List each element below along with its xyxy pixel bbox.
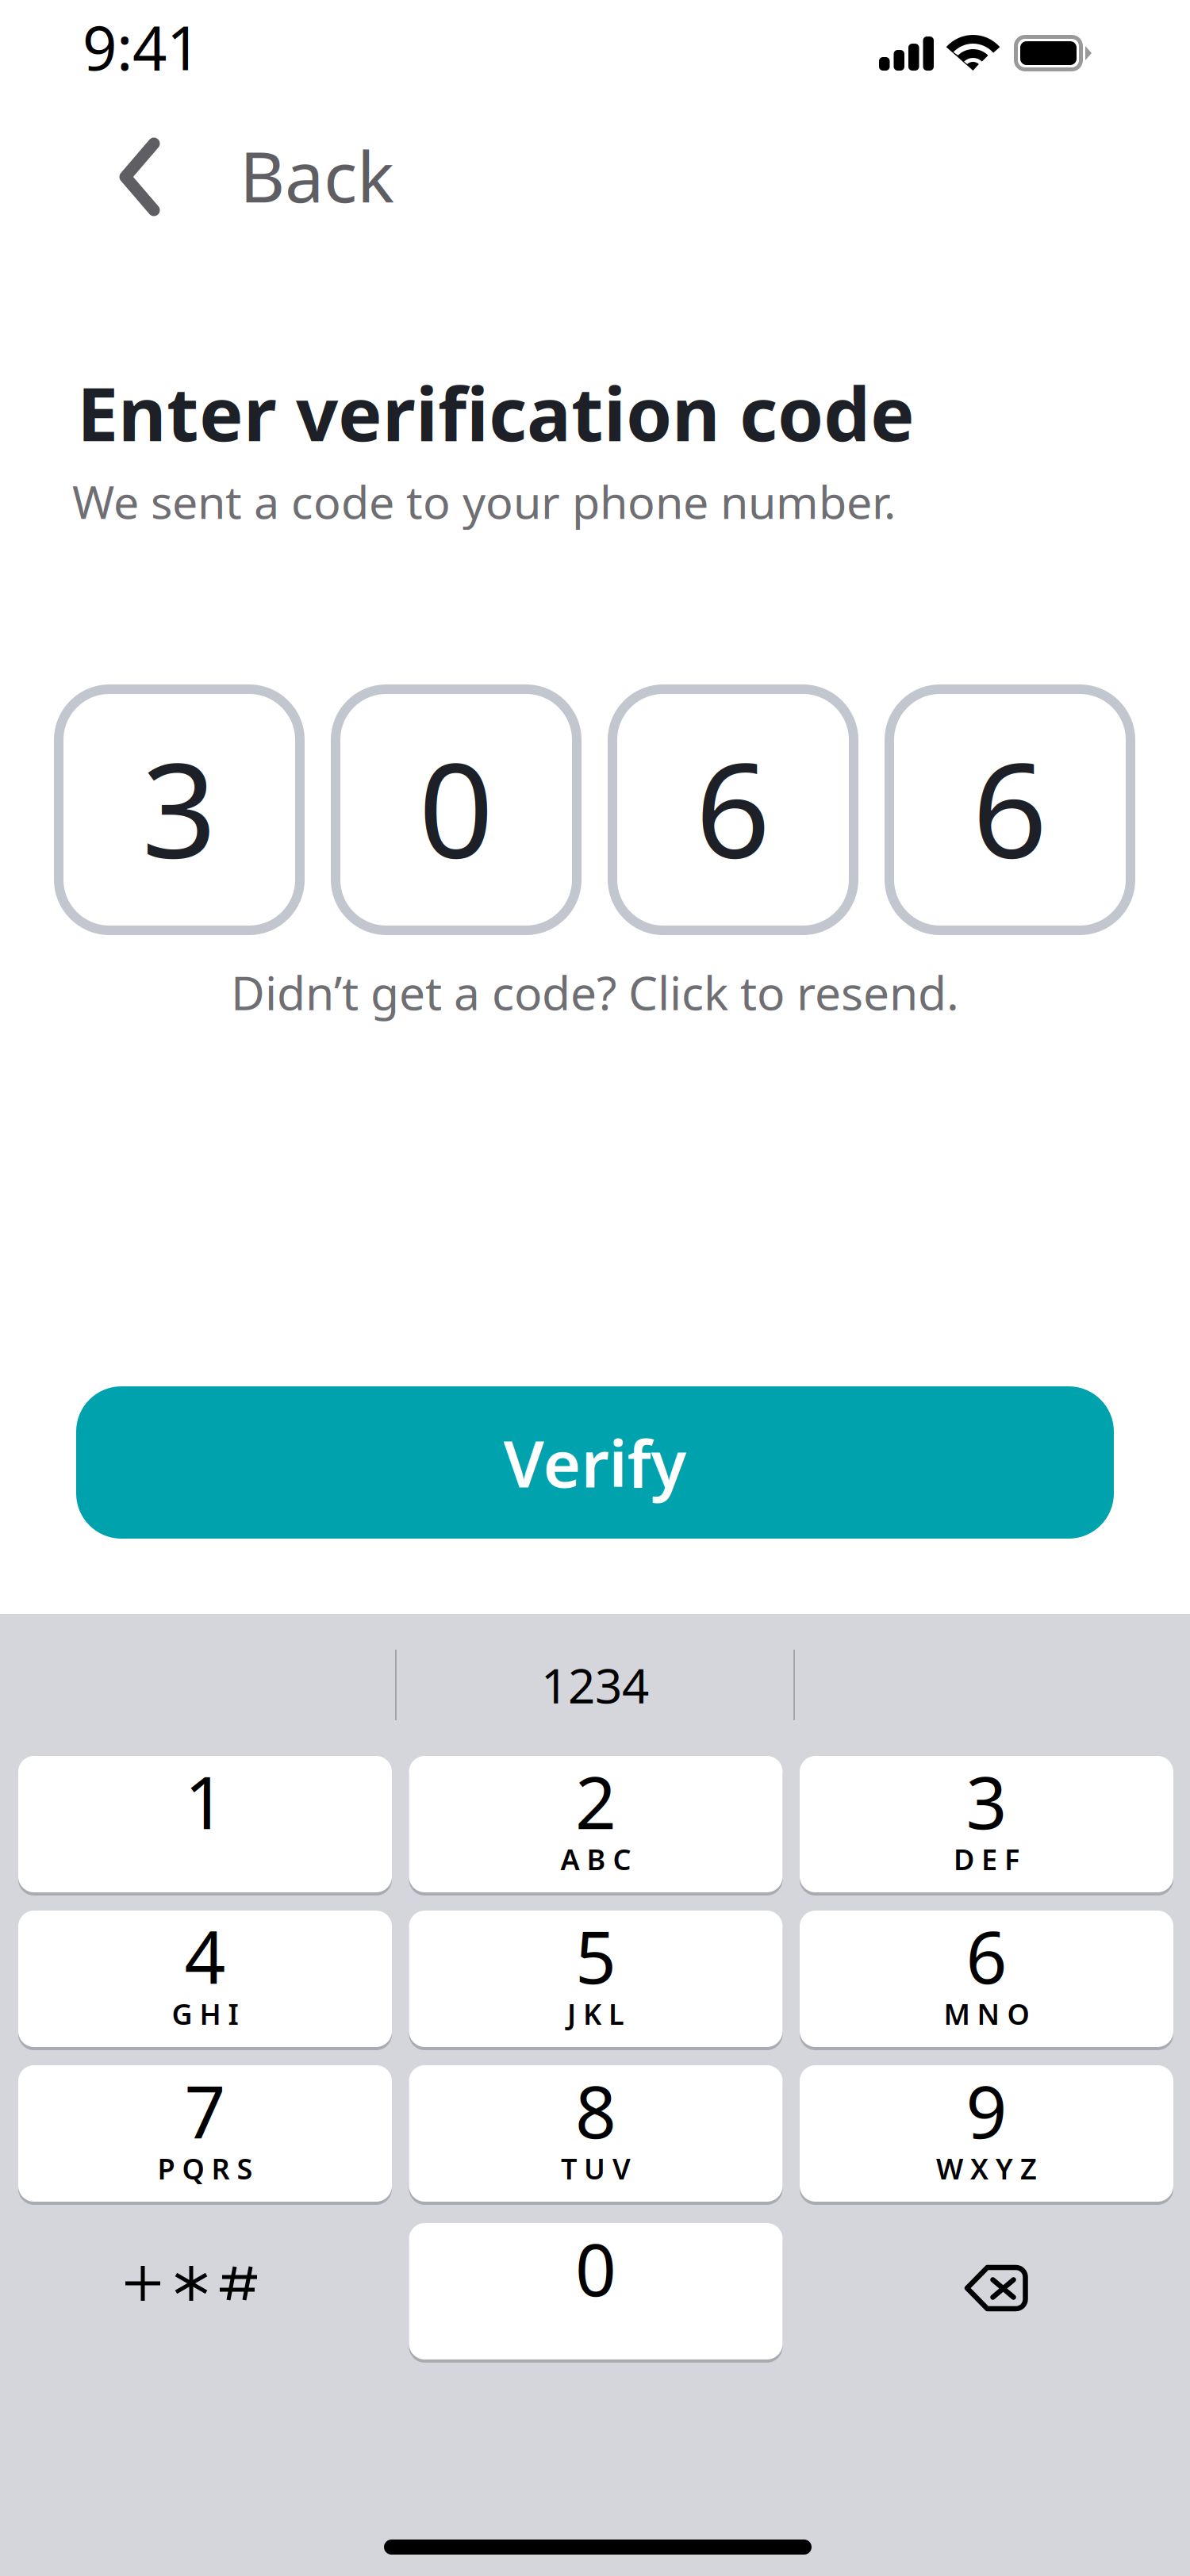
staticText: 3 <box>966 1753 1007 1849</box>
staticText: 1 <box>184 1753 226 1849</box>
staticText: P Q R S <box>157 2149 253 2187</box>
staticText: 8 <box>575 2063 616 2158</box>
staticText: 3 <box>142 720 217 894</box>
button[interactable]: 1234 <box>397 1614 793 1756</box>
staticText: 6 <box>972 720 1048 894</box>
staticText: D E F <box>954 1840 1019 1878</box>
staticText: We sent a code to your phone number. <box>72 471 896 531</box>
staticText: 4 <box>184 1908 226 2004</box>
staticText: 2 <box>575 1753 616 1849</box>
button[interactable]: 9 <box>800 2065 1173 2202</box>
staticText: Enter verification code <box>77 363 915 462</box>
staticText: 0 <box>418 720 494 894</box>
button[interactable]: 2 <box>409 1756 783 1892</box>
button[interactable]: Verify <box>76 1386 1114 1539</box>
button[interactable]: 1 <box>18 1756 392 1892</box>
button[interactable]: Symbols <box>18 2223 392 2359</box>
staticText: 6 <box>695 720 771 894</box>
staticText: 6 <box>966 1908 1007 2004</box>
button[interactable]: Delete <box>800 2223 1173 2359</box>
staticText: 9:41 <box>83 7 201 87</box>
staticText: A B C <box>560 1840 631 1878</box>
button[interactable]: 3 <box>800 1756 1173 1892</box>
button[interactable]: 4 <box>18 1911 392 2047</box>
staticText: 7 <box>184 2063 226 2158</box>
staticText: 0 <box>575 2221 616 2316</box>
staticText: 9 <box>966 2063 1007 2158</box>
button[interactable]: 5 <box>409 1911 783 2047</box>
button[interactable]: Back <box>0 102 333 220</box>
button[interactable]: 7 <box>18 2065 392 2202</box>
staticText: J K L <box>567 1995 624 2033</box>
button[interactable]: 0 <box>409 2223 783 2359</box>
staticText: 1234 <box>541 1653 649 1717</box>
staticText: G H I <box>172 1995 238 2033</box>
button[interactable]: 6 <box>800 1911 1173 2047</box>
staticText: Verify <box>503 1420 687 1505</box>
button[interactable]: Didn’t get a code? Click to resend. <box>0 956 1190 1028</box>
staticText: Didn’t get a code? Click to resend. <box>231 961 959 1023</box>
staticText: Back <box>240 129 394 222</box>
button[interactable]: 8 <box>409 2065 783 2202</box>
staticText: T U V <box>561 2149 631 2187</box>
staticText: W X Y Z <box>936 2149 1037 2187</box>
staticText: 5 <box>575 1908 616 2004</box>
staticText: M N O <box>944 1995 1029 2033</box>
